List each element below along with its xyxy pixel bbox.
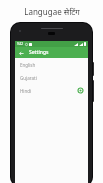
button[interactable]: Gujarati <box>15 71 88 84</box>
staticText: Settings <box>29 49 49 56</box>
staticText: 9:22 <box>17 42 23 46</box>
staticText: English <box>20 62 36 68</box>
staticText: Langugae सेटिंग <box>24 6 80 17</box>
button[interactable]: Back <box>17 49 25 57</box>
button[interactable]: English <box>15 58 88 71</box>
staticText: Hindi <box>20 88 32 94</box>
staticText: Gujarati <box>20 75 37 81</box>
button[interactable]: Hindi <box>15 84 88 97</box>
